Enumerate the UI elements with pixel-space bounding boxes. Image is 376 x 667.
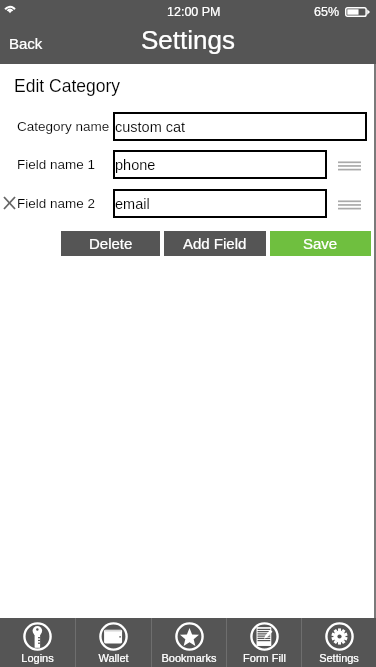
button[interactable]: Delete bbox=[61, 231, 160, 256]
staticText: Edit Category bbox=[14, 76, 121, 96]
staticText: 65% bbox=[314, 5, 340, 19]
staticText: custom cat bbox=[115, 119, 186, 135]
button[interactable]: Remove field bbox=[4, 197, 15, 209]
button[interactable]: Back bbox=[0, 24, 57, 62]
staticText: Add Field bbox=[183, 235, 247, 252]
staticText: Settings bbox=[319, 652, 359, 664]
staticText: Field name 1 bbox=[17, 157, 96, 172]
button[interactable]: Add Field bbox=[164, 231, 266, 256]
staticText: Back bbox=[9, 35, 43, 52]
button[interactable]: Settings bbox=[302, 618, 376, 667]
button[interactable]: Reorder field bbox=[338, 195, 361, 211]
staticText: Bookmarks bbox=[161, 652, 217, 664]
button[interactable]: Bookmarks bbox=[152, 618, 226, 667]
staticText: Delete bbox=[89, 235, 133, 252]
staticText: 12:00 PM bbox=[167, 5, 221, 19]
staticText: Logins bbox=[21, 652, 54, 664]
staticText: phone bbox=[115, 157, 156, 173]
button[interactable]: Form Fill bbox=[227, 618, 301, 667]
staticText: email bbox=[115, 196, 150, 212]
button[interactable]: Reorder field bbox=[338, 156, 361, 172]
button[interactable]: Logins bbox=[0, 618, 75, 667]
button[interactable]: custom cat bbox=[113, 112, 367, 141]
staticText: Field name 2 bbox=[17, 196, 96, 211]
staticText: Settings bbox=[141, 25, 235, 54]
staticText: Form Fill bbox=[243, 652, 286, 664]
staticText: Category name bbox=[17, 119, 110, 134]
button[interactable]: Wallet bbox=[76, 618, 151, 667]
button[interactable]: Save bbox=[270, 231, 371, 256]
staticText: Save bbox=[303, 235, 338, 252]
button[interactable]: phone bbox=[113, 150, 327, 179]
button[interactable]: email bbox=[113, 189, 327, 218]
staticText: Wallet bbox=[98, 652, 129, 664]
